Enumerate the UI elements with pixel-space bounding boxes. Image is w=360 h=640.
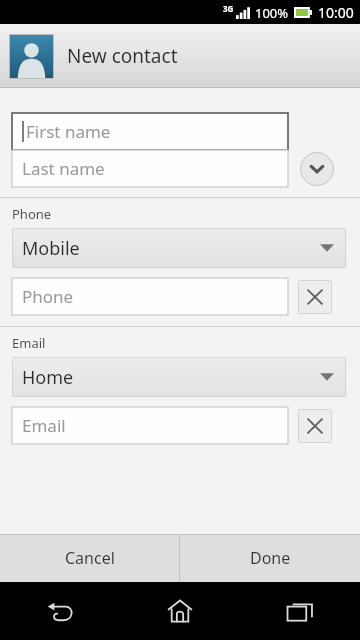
- staticText: Last name: [22, 157, 105, 180]
- staticText: First name: [26, 120, 111, 143]
- button[interactable]: Email: [12, 407, 288, 444]
- staticText: Home: [22, 365, 74, 390]
- button[interactable]: Last name: [12, 150, 288, 187]
- staticText: Mobile: [22, 236, 80, 261]
- button[interactable]: Clear: [298, 409, 332, 443]
- staticText: New contact: [67, 43, 178, 69]
- staticText: Phone: [22, 285, 74, 308]
- button[interactable]: Home: [120, 582, 240, 640]
- button[interactable]: Recent apps: [240, 582, 360, 640]
- staticText: Email: [22, 414, 66, 437]
- staticText: Email: [12, 334, 46, 352]
- button[interactable]: Done: [180, 534, 360, 582]
- button[interactable]: Back: [0, 582, 120, 640]
- button[interactable]: Mobile: [12, 228, 346, 268]
- button[interactable]: Clear: [298, 280, 332, 314]
- button[interactable]: Cancel: [0, 534, 179, 582]
- staticText: Done: [250, 547, 291, 569]
- staticText: Phone: [12, 205, 52, 223]
- button[interactable]: First name: [12, 113, 288, 150]
- button[interactable]: Phone: [12, 278, 288, 315]
- button[interactable]: Expand name fields: [300, 152, 334, 186]
- staticText: Cancel: [65, 547, 115, 569]
- staticText: 3G: [223, 3, 234, 14]
- staticText: 10:00: [318, 3, 354, 22]
- staticText: 100%: [255, 4, 289, 22]
- button[interactable]: Home: [12, 357, 346, 397]
